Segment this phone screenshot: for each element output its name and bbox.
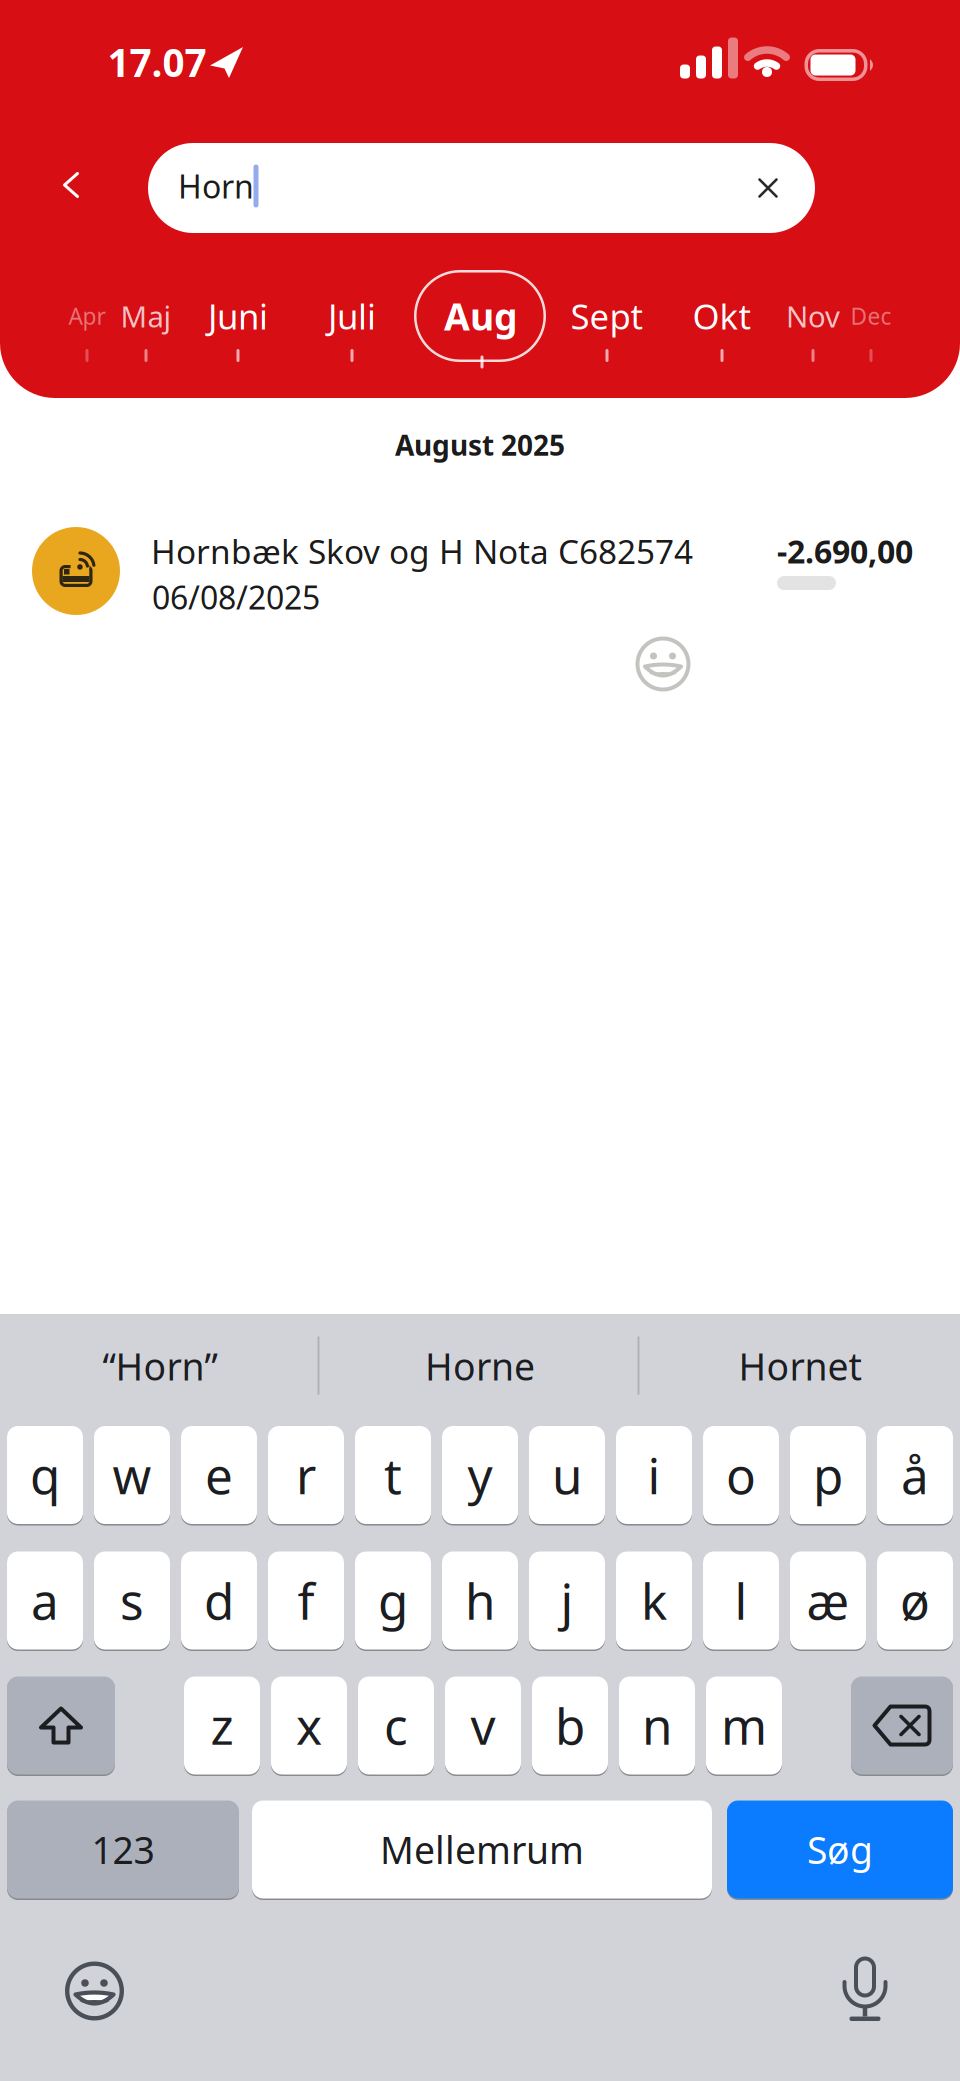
staticText: q: [30, 1442, 60, 1508]
staticText: v: [470, 1693, 495, 1758]
staticText: m: [721, 1693, 767, 1758]
button[interactable]: 123: [7, 1800, 239, 1899]
staticText: z: [210, 1693, 233, 1758]
staticText: 123: [91, 1825, 154, 1874]
button[interactable]: Dec: [844, 293, 897, 339]
staticText: 17.07: [107, 36, 206, 88]
button[interactable]: Shift: [7, 1676, 115, 1775]
button[interactable]: i: [616, 1425, 692, 1524]
button[interactable]: w: [94, 1425, 170, 1524]
staticText: i: [647, 1442, 660, 1508]
button[interactable]: d: [181, 1551, 257, 1650]
staticText: b: [555, 1693, 585, 1758]
button[interactable]: b: [532, 1676, 608, 1775]
button[interactable]: Okt: [686, 285, 757, 347]
staticText: “Horn”: [102, 1341, 217, 1391]
staticText: Hornet: [738, 1341, 861, 1391]
staticText: g: [378, 1568, 408, 1633]
button[interactable]: n: [619, 1676, 695, 1775]
staticText: y: [467, 1442, 492, 1508]
staticText: l: [734, 1568, 747, 1633]
staticText: -2.690,00: [777, 530, 913, 572]
staticText: Aug: [444, 291, 518, 341]
button[interactable]: a: [7, 1551, 83, 1650]
button[interactable]: z: [184, 1676, 260, 1775]
staticText: å: [901, 1442, 929, 1508]
button[interactable]: l: [703, 1551, 779, 1650]
button[interactable]: Emoji: [55, 1951, 134, 2030]
staticText: æ: [806, 1568, 849, 1633]
button[interactable]: æ: [790, 1551, 866, 1650]
button[interactable]: p: [790, 1425, 866, 1524]
staticText: Juni: [208, 293, 268, 339]
staticText: d: [204, 1568, 234, 1633]
button[interactable]: c: [358, 1676, 434, 1775]
button[interactable]: å: [877, 1425, 953, 1524]
button[interactable]: f: [268, 1551, 344, 1650]
button[interactable]: k: [616, 1551, 692, 1650]
staticText: Horne: [425, 1341, 535, 1391]
button[interactable]: q: [7, 1425, 83, 1524]
staticText: Mellemrum: [380, 1825, 584, 1874]
button[interactable]: Søg: [727, 1800, 953, 1899]
button[interactable]: h: [442, 1551, 518, 1650]
staticText: f: [297, 1568, 314, 1633]
button[interactable]: x: [271, 1676, 347, 1775]
staticText: Dec: [850, 301, 891, 331]
button[interactable]: e: [181, 1425, 257, 1524]
staticText: p: [813, 1442, 843, 1508]
button[interactable]: Dictation: [832, 1946, 897, 2031]
staticText: t: [384, 1442, 402, 1508]
staticText: Apr: [68, 301, 105, 331]
button[interactable]: Sept: [564, 285, 649, 347]
button[interactable]: Clear search: [746, 166, 789, 209]
button[interactable]: “Horn”: [20, 1321, 300, 1411]
staticText: Nov: [786, 296, 840, 335]
button[interactable]: Aug: [438, 283, 524, 349]
button[interactable]: ø: [877, 1551, 953, 1650]
button[interactable]: y: [442, 1425, 518, 1524]
button[interactable]: Juli: [322, 285, 382, 347]
button[interactable]: Apr: [62, 293, 111, 339]
staticText: r: [296, 1442, 316, 1508]
staticText: x: [296, 1693, 322, 1758]
button[interactable]: Back: [49, 158, 93, 212]
staticText: a: [31, 1568, 59, 1633]
button[interactable]: g: [355, 1551, 431, 1650]
staticText: ø: [900, 1568, 930, 1633]
button[interactable]: Nov: [780, 288, 846, 343]
staticText: 06/08/2025: [152, 576, 320, 618]
staticText: e: [205, 1442, 233, 1508]
button[interactable]: m: [706, 1676, 782, 1775]
staticText: k: [641, 1568, 667, 1633]
staticText: Hornbæk Skov og H Nota C682574: [151, 529, 693, 573]
staticText: u: [552, 1442, 582, 1508]
button[interactable]: s: [94, 1551, 170, 1650]
staticText: Maj: [120, 296, 171, 335]
button[interactable]: j: [529, 1551, 605, 1650]
button[interactable]: Juni: [202, 285, 274, 347]
button[interactable]: Hornbæk Skov og H Nota C682574: [32, 527, 913, 615]
staticText: Juli: [328, 293, 376, 339]
button[interactable]: Maj: [114, 288, 177, 343]
staticText: j: [560, 1568, 573, 1633]
staticText: o: [726, 1442, 756, 1508]
button[interactable]: Mellemrum: [252, 1800, 712, 1899]
staticText: Sept: [570, 293, 643, 339]
button[interactable]: v: [445, 1676, 521, 1775]
button[interactable]: t: [355, 1425, 431, 1524]
button[interactable]: Hornet: [660, 1321, 940, 1411]
button[interactable]: Horne: [340, 1321, 620, 1411]
staticText: Søg: [807, 1825, 873, 1874]
staticText: c: [384, 1693, 408, 1758]
button[interactable]: u: [529, 1425, 605, 1524]
staticText: n: [642, 1693, 672, 1758]
staticText: s: [120, 1568, 144, 1633]
button[interactable]: r: [268, 1425, 344, 1524]
staticText: Okt: [692, 293, 751, 339]
staticText: August 2025: [395, 426, 565, 464]
button[interactable]: Delete: [851, 1676, 953, 1775]
staticText: h: [465, 1568, 495, 1633]
staticText: w: [112, 1442, 151, 1508]
button[interactable]: o: [703, 1425, 779, 1524]
